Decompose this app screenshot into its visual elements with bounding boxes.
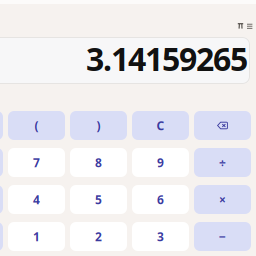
button[interactable]: Delete (194, 111, 251, 140)
staticText: 4 (33, 191, 40, 208)
staticText: ÷ (219, 154, 226, 171)
staticText: × (219, 191, 226, 208)
staticText: 5 (95, 191, 102, 208)
button[interactable]: 9 (132, 148, 189, 177)
staticText: C (156, 117, 164, 134)
button[interactable]: C (132, 111, 189, 140)
staticText: ) (96, 117, 100, 134)
staticText: 2 (95, 228, 102, 245)
staticText: 3.14159265 (86, 37, 248, 80)
button[interactable]: 4 (8, 185, 65, 214)
button[interactable]: − (194, 222, 251, 251)
button[interactable]: 8 (70, 148, 127, 177)
staticText: 1 (33, 228, 40, 245)
staticText: 8 (95, 154, 102, 171)
button[interactable]: ÷ (194, 148, 251, 177)
button[interactable]: 6 (132, 185, 189, 214)
button[interactable]: 5 (70, 185, 127, 214)
button[interactable]: 1 (8, 222, 65, 251)
staticText: 9 (157, 154, 164, 171)
button[interactable]: 2 (70, 222, 127, 251)
button[interactable]: ) (70, 111, 127, 140)
staticText: 3 (157, 228, 164, 245)
button[interactable]: ( (8, 111, 65, 140)
button[interactable]: 3 (132, 222, 189, 251)
button[interactable]: × (194, 185, 251, 214)
staticText: − (219, 228, 226, 245)
staticText: 6 (157, 191, 164, 208)
button[interactable]: Constants (237, 23, 243, 29)
staticText: 7 (33, 154, 40, 171)
button[interactable]: 7 (8, 148, 65, 177)
staticText: ( (34, 117, 38, 134)
button[interactable]: History (247, 24, 252, 29)
